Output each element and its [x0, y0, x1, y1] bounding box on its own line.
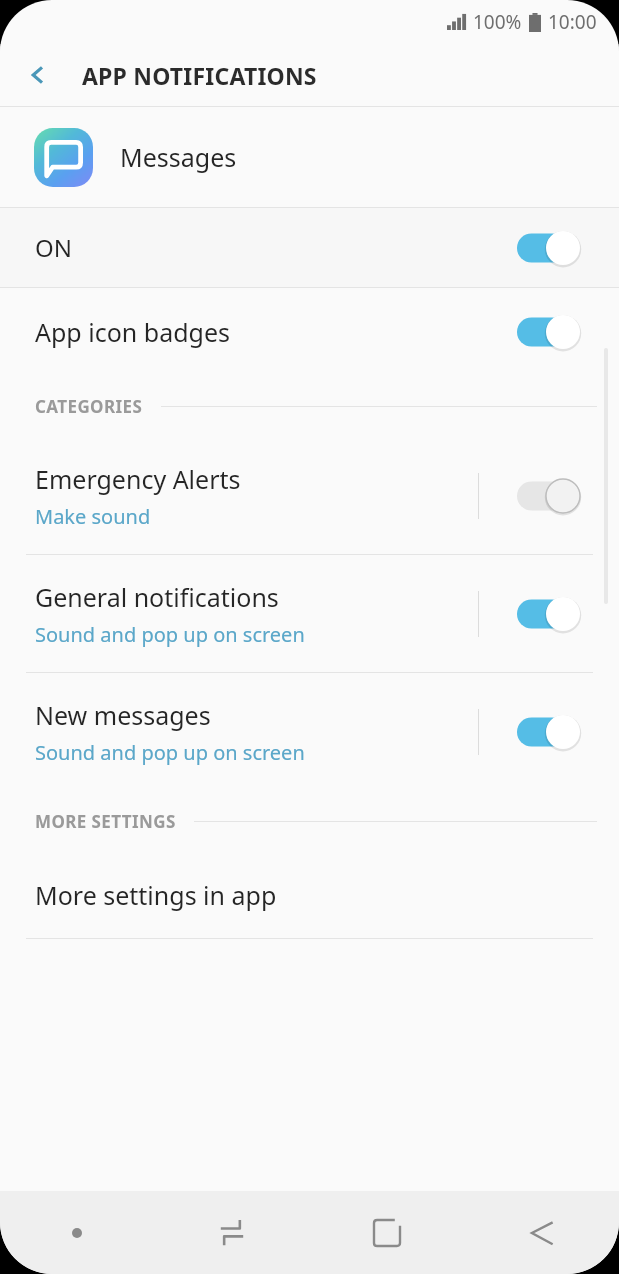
staticText: Sound and pop up on screen: [35, 739, 305, 766]
staticText: 10:00: [548, 9, 597, 35]
button[interactable]: Back: [516, 1207, 568, 1259]
button[interactable]: Toggle on: [517, 230, 581, 266]
staticText: General notifications: [35, 580, 279, 614]
button[interactable]: Toggle on: [517, 596, 581, 632]
staticText: MORE SETTINGS: [35, 810, 176, 833]
button[interactable]: New messages: [0, 673, 619, 790]
button[interactable]: Toggle off: [517, 478, 581, 514]
button[interactable]: General notifications: [0, 555, 619, 672]
staticText: App icon badges: [35, 315, 230, 349]
staticText: ON: [35, 231, 72, 264]
staticText: New messages: [35, 698, 211, 732]
button[interactable]: Recents: [206, 1207, 258, 1259]
button[interactable]: App icon badges: [0, 288, 619, 375]
button[interactable]: Emergency Alerts: [0, 437, 619, 554]
button[interactable]: Keyboard indicator: [55, 1211, 99, 1255]
button[interactable]: Toggle on: [517, 314, 581, 350]
staticText: Make sound: [35, 503, 151, 530]
button[interactable]: Back: [18, 55, 58, 95]
staticText: APP NOTIFICATIONS: [82, 60, 317, 91]
button[interactable]: More settings in app: [0, 852, 619, 938]
button[interactable]: Toggle on: [517, 714, 581, 750]
staticText: Messages: [120, 140, 237, 174]
staticText: 100%: [473, 9, 522, 35]
button[interactable]: Messages: [0, 107, 619, 207]
staticText: Sound and pop up on screen: [35, 621, 305, 648]
staticText: Emergency Alerts: [35, 462, 241, 496]
staticText: More settings in app: [35, 878, 277, 912]
button[interactable]: ON: [0, 208, 619, 287]
staticText: CATEGORIES: [35, 395, 143, 418]
button[interactable]: Home: [361, 1207, 413, 1259]
